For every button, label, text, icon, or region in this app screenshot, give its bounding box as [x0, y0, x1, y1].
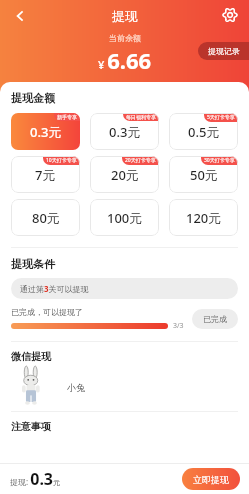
button[interactable]: 小兔 [11, 366, 238, 408]
staticText: 已完成 [203, 314, 227, 324]
staticText: ¥ 6.66 [98, 45, 152, 75]
button[interactable]: 7元 [11, 156, 80, 193]
staticText: 3/3 [173, 321, 184, 331]
button[interactable]: 0.3元 [11, 113, 80, 150]
staticText: 当前余额 [109, 33, 141, 43]
staticText: 注意事项 [11, 420, 51, 433]
staticText: 100元 [107, 209, 143, 227]
staticText: 已完成，可以提现了 [11, 307, 83, 317]
button[interactable]: 20元 [90, 156, 159, 193]
button[interactable]: 50元 [169, 156, 238, 193]
staticText: 提现记录 [208, 46, 240, 56]
button[interactable]: 80元 [11, 199, 80, 236]
staticText: 5天打卡专享 [207, 114, 235, 121]
button[interactable]: 提现记录 [198, 42, 249, 60]
staticText: 新手专享 [57, 114, 77, 120]
staticText: 提现 [112, 8, 138, 24]
staticText: 10天打卡专享 [46, 157, 77, 164]
staticText: 30天打卡专享 [204, 157, 235, 164]
staticText: 立即提现 [193, 474, 229, 485]
staticText: 小兔 [67, 382, 85, 393]
staticText: 提现条件 [11, 257, 55, 271]
button[interactable]: Settings [218, 3, 242, 27]
button[interactable]: 0.3元 [90, 113, 159, 150]
staticText: 提现: 0.3元 [10, 468, 61, 490]
button[interactable]: 立即提现 [182, 468, 240, 490]
staticText: 提现金额 [11, 91, 55, 105]
button[interactable]: 100元 [90, 199, 159, 236]
staticText: 80元 [32, 209, 60, 227]
staticText: 0.3元 [30, 123, 62, 141]
staticText: 20天打卡专享 [125, 157, 156, 164]
staticText: 7元 [35, 166, 56, 184]
staticText: 0.3元 [109, 123, 141, 141]
staticText: 通过第3关可以提现 [20, 283, 89, 294]
staticText: 每日福利专享 [126, 114, 156, 120]
button[interactable]: 已完成 [192, 309, 238, 329]
staticText: 0.5元 [188, 123, 220, 141]
staticText: 120元 [186, 209, 222, 227]
button[interactable]: Back [7, 3, 33, 29]
button[interactable]: 120元 [169, 199, 238, 236]
staticText: 50元 [190, 166, 218, 184]
staticText: 20元 [111, 166, 139, 184]
button[interactable]: 0.5元 [169, 113, 238, 150]
staticText: 微信提现 [11, 350, 51, 363]
